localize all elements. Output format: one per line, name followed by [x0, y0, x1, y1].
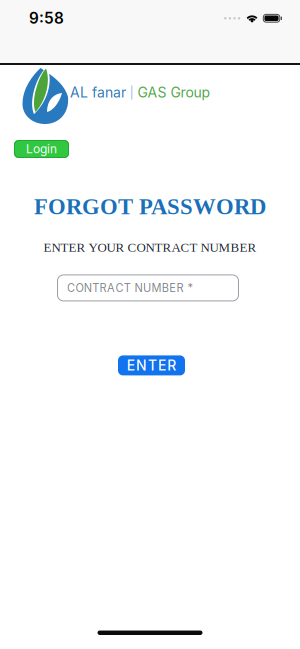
staticText: C — [115, 281, 123, 295]
staticText: R — [167, 357, 176, 374]
staticText: A — [107, 281, 115, 295]
staticText: * — [187, 281, 193, 295]
staticText: FORGOT PASSWORD — [34, 194, 266, 219]
staticText: GAS Group — [137, 84, 210, 101]
staticText: R — [177, 281, 184, 295]
staticText: T — [92, 281, 99, 295]
staticText: E — [169, 281, 176, 295]
staticText: R — [100, 281, 107, 295]
button[interactable]: C — [59, 274, 241, 301]
staticText: M — [151, 281, 161, 295]
staticText: 9:58 — [29, 9, 64, 28]
staticText: ENTER YOUR CONTRACT NUMBER — [43, 240, 256, 254]
staticText: AL fanar — [70, 84, 126, 101]
staticText: E — [158, 357, 166, 374]
staticText: B — [162, 281, 169, 295]
staticText: U — [143, 281, 151, 295]
staticText: N — [84, 281, 92, 295]
staticText: T — [124, 281, 131, 295]
staticText: N — [135, 281, 143, 295]
staticText: E — [127, 357, 135, 374]
button[interactable]: Login — [14, 140, 69, 158]
staticText: O — [75, 281, 83, 295]
staticText: Login — [26, 142, 57, 156]
button[interactable]: E — [116, 355, 183, 375]
staticText: N — [136, 357, 147, 374]
staticText: C — [67, 281, 75, 295]
staticText: T — [148, 357, 157, 374]
